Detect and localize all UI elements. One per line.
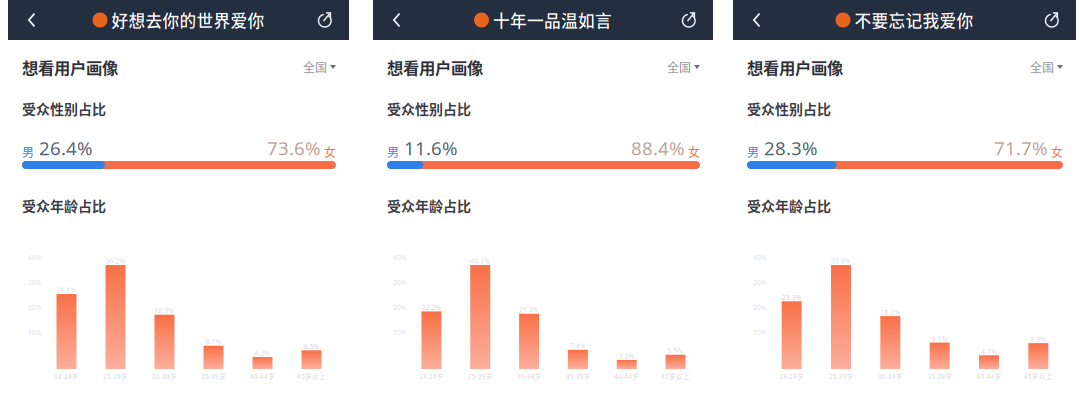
staticText: 6.5% bbox=[303, 342, 319, 351]
staticText: 20% bbox=[393, 303, 407, 312]
button[interactable]: Share bbox=[308, 0, 342, 40]
staticText: 4.7% bbox=[981, 347, 997, 356]
staticText: 18-24岁 bbox=[419, 371, 444, 381]
staticText: 25-29岁 bbox=[828, 371, 853, 381]
staticText: 8.9% bbox=[1030, 335, 1046, 344]
staticText: 40% bbox=[393, 253, 407, 262]
staticText: 22.2% bbox=[421, 303, 441, 312]
staticText: 73.6% bbox=[267, 136, 321, 160]
staticText: 8.1% bbox=[205, 337, 221, 346]
staticText: 好想去你的世界爱你 bbox=[111, 8, 264, 32]
staticText: 40.1% bbox=[470, 257, 490, 265]
staticText: 26.4% bbox=[34, 136, 93, 160]
staticText: 40-44岁 bbox=[250, 371, 275, 381]
staticText: 9.1% bbox=[932, 334, 948, 343]
staticText: 35-39岁 bbox=[201, 371, 226, 381]
staticText: 40% bbox=[753, 253, 767, 262]
staticText: 40% bbox=[28, 253, 42, 262]
staticText: 全国 bbox=[667, 58, 691, 76]
staticText: 想看用户画像 bbox=[22, 55, 118, 79]
staticText: 23.3% bbox=[782, 293, 802, 302]
staticText: 11.6% bbox=[399, 136, 458, 160]
staticText: 受众性别占比 bbox=[747, 98, 831, 119]
staticText: 10% bbox=[753, 328, 767, 337]
button[interactable]: 全国 bbox=[667, 57, 700, 77]
staticText: 18-24岁 bbox=[779, 371, 804, 381]
staticText: 40-44岁 bbox=[614, 371, 639, 381]
staticText: 36.2% bbox=[105, 257, 125, 265]
staticText: 男 bbox=[387, 143, 399, 160]
staticText: 不要忘记我爱你 bbox=[854, 8, 973, 32]
staticText: 28.3% bbox=[759, 136, 818, 160]
staticText: 女 bbox=[685, 143, 700, 160]
staticText: 受众年龄占比 bbox=[387, 195, 471, 216]
staticText: 男 bbox=[22, 143, 34, 160]
staticText: 25-29岁 bbox=[103, 371, 128, 381]
staticText: 全国 bbox=[303, 58, 327, 76]
staticText: 35.8% bbox=[831, 257, 851, 265]
button[interactable]: 全国 bbox=[303, 57, 336, 77]
staticText: 10% bbox=[28, 328, 42, 337]
staticText: 受众性别占比 bbox=[22, 98, 106, 119]
staticText: 71.7% bbox=[994, 136, 1048, 160]
button[interactable]: Share bbox=[672, 0, 706, 40]
staticText: 30-34岁 bbox=[878, 371, 903, 381]
staticText: 想看用户画像 bbox=[387, 55, 483, 79]
staticText: 想看用户画像 bbox=[747, 55, 843, 79]
button[interactable]: 全国 bbox=[1030, 57, 1063, 77]
staticText: 30% bbox=[753, 278, 767, 287]
staticText: 35-39岁 bbox=[565, 371, 590, 381]
staticText: 男 bbox=[747, 143, 759, 160]
staticText: 5.5% bbox=[668, 346, 684, 355]
staticText: 受众年龄占比 bbox=[747, 195, 831, 216]
staticText: 20% bbox=[753, 303, 767, 312]
staticText: 受众性别占比 bbox=[387, 98, 471, 119]
button[interactable]: Back bbox=[740, 0, 774, 40]
staticText: 4.2% bbox=[254, 348, 270, 357]
staticText: 25-29岁 bbox=[468, 371, 493, 381]
staticText: 45岁以上 bbox=[661, 371, 690, 381]
staticText: 88.4% bbox=[631, 136, 685, 160]
button[interactable]: Back bbox=[380, 0, 414, 40]
staticText: 30-34岁 bbox=[152, 371, 177, 381]
staticText: 7.4% bbox=[570, 341, 586, 350]
staticText: 45岁以上 bbox=[297, 371, 326, 381]
staticText: 3.5% bbox=[619, 351, 635, 360]
staticText: 45岁以上 bbox=[1024, 371, 1053, 381]
staticText: 女 bbox=[1048, 143, 1063, 160]
staticText: 20% bbox=[28, 303, 42, 312]
staticText: 26.1% bbox=[56, 286, 76, 294]
staticText: 全国 bbox=[1030, 58, 1054, 76]
staticText: 18.2% bbox=[880, 308, 900, 317]
staticText: 18.9% bbox=[154, 306, 174, 315]
button[interactable]: Back bbox=[15, 0, 49, 40]
staticText: 10% bbox=[393, 328, 407, 337]
staticText: 18-24岁 bbox=[54, 371, 79, 381]
staticText: 女 bbox=[321, 143, 336, 160]
button[interactable]: Share bbox=[1035, 0, 1069, 40]
staticText: 30-34岁 bbox=[517, 371, 542, 381]
staticText: 受众年龄占比 bbox=[22, 195, 106, 216]
staticText: 21.3% bbox=[519, 305, 539, 314]
staticText: 30% bbox=[393, 278, 407, 287]
staticText: 35-39岁 bbox=[927, 371, 952, 381]
staticText: 30% bbox=[28, 278, 42, 287]
staticText: 十年一品温如言 bbox=[493, 8, 612, 32]
staticText: 40-44岁 bbox=[976, 371, 1001, 381]
